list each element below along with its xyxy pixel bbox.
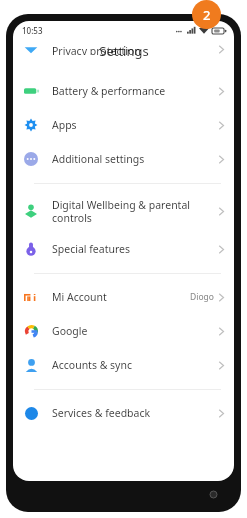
staticText: 10:53 bbox=[22, 25, 43, 36]
button[interactable]: Services & feedback bbox=[13, 396, 234, 430]
staticText: Special features bbox=[52, 242, 213, 256]
staticText: Diogo bbox=[190, 291, 214, 303]
staticText: Google bbox=[52, 324, 213, 338]
button[interactable]: Digital Wellbeing & parental controls bbox=[13, 190, 234, 232]
staticText: Digital Wellbeing & parental controls bbox=[52, 198, 213, 225]
staticText: Apps bbox=[52, 118, 213, 132]
staticText: Mi Account bbox=[52, 290, 184, 304]
staticText: Additional settings bbox=[52, 152, 213, 166]
button[interactable]: Accounts & sync bbox=[13, 348, 234, 382]
staticText: Battery & performance bbox=[52, 84, 213, 98]
button[interactable]: Special features bbox=[13, 232, 234, 266]
button[interactable]: Notification count 2 bbox=[192, 0, 221, 29]
staticText: Accounts & sync bbox=[52, 358, 213, 372]
button[interactable]: Google bbox=[13, 314, 234, 348]
button[interactable]: Additional settings bbox=[13, 142, 234, 176]
staticText: 2 bbox=[203, 6, 211, 24]
staticText: Privacy protection bbox=[52, 44, 213, 55]
button[interactable]: Battery & performance bbox=[13, 74, 234, 108]
button[interactable]: Apps bbox=[13, 108, 234, 142]
staticText: Settings bbox=[99, 42, 149, 60]
button[interactable]: Mi Account bbox=[13, 280, 234, 314]
staticText: Services & feedback bbox=[52, 406, 213, 420]
